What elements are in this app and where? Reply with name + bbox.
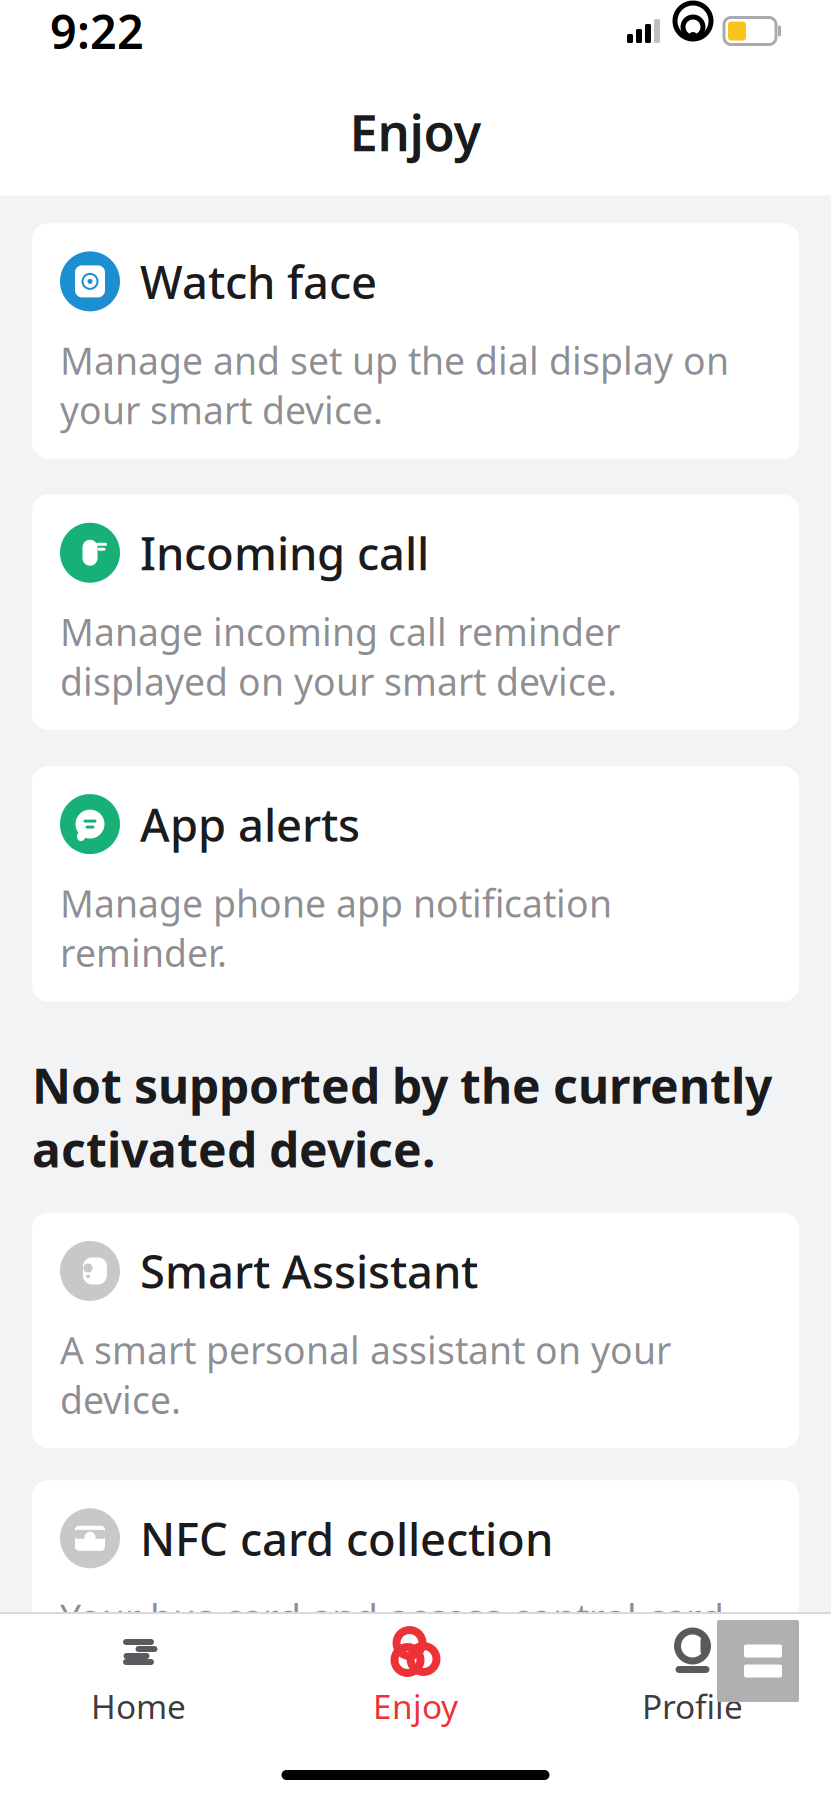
staticText: Smart Assistant: [140, 1241, 478, 1301]
button[interactable]: Incoming call: [32, 495, 799, 730]
staticText: Not supported by the currently activated…: [32, 1053, 772, 1181]
button[interactable]: Watch face: [32, 223, 799, 459]
staticText: NFC card collection: [140, 1508, 553, 1568]
staticText: Enjoy: [373, 1684, 458, 1728]
staticText: 9:22: [50, 0, 144, 62]
button[interactable]: Home: [0, 1614, 277, 1738]
staticText: Enjoy: [349, 98, 481, 165]
button[interactable]: App alerts: [32, 766, 799, 1001]
staticText: Manage phone app notification reminder.: [60, 878, 612, 977]
button[interactable]: Smart Assistant: [32, 1213, 799, 1448]
button[interactable]: Enjoy: [277, 1614, 554, 1738]
button[interactable]: Profile: [554, 1614, 831, 1738]
staticText: App alerts: [140, 794, 360, 854]
staticText: Manage and set up the dial display on yo…: [60, 335, 729, 435]
staticText: Watch face: [140, 251, 377, 311]
staticText: Home: [91, 1684, 186, 1728]
button[interactable]: NFC card collection: [32, 1480, 799, 1716]
staticText: A smart personal assistant on your devic…: [60, 1325, 671, 1424]
staticText: Profile: [642, 1684, 743, 1728]
staticText: Incoming call: [140, 523, 429, 583]
staticText: Manage incoming call reminder displayed …: [60, 607, 620, 706]
staticText: Your bus card and access control card ar…: [60, 1592, 724, 1692]
